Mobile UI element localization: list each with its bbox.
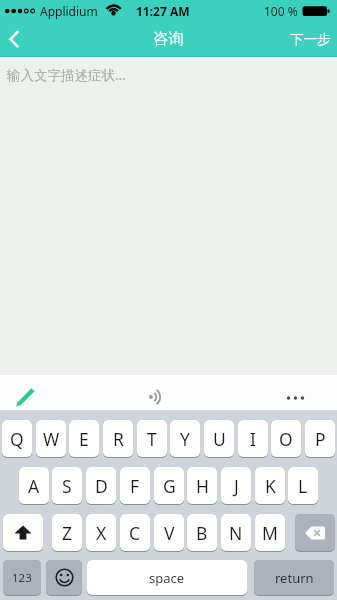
staticText: I xyxy=(250,427,256,451)
staticText: D xyxy=(95,474,108,498)
button[interactable]: C xyxy=(120,514,150,551)
button[interactable] xyxy=(295,514,335,551)
button[interactable]: D xyxy=(86,467,116,504)
button[interactable]: O xyxy=(271,420,301,457)
staticText: B xyxy=(196,521,208,545)
staticText: S xyxy=(62,474,72,498)
staticText: 下一步 xyxy=(290,31,331,48)
staticText: P xyxy=(315,427,326,451)
button[interactable]: Z xyxy=(52,514,82,551)
button[interactable]: U xyxy=(204,420,234,457)
staticText: Y xyxy=(180,427,190,451)
button[interactable]: H xyxy=(187,467,217,504)
button[interactable] xyxy=(12,383,40,410)
button[interactable] xyxy=(46,560,82,595)
staticText: L xyxy=(298,474,308,498)
staticText: space xyxy=(149,569,185,587)
staticText: return xyxy=(275,569,314,587)
staticText: C xyxy=(129,521,141,545)
button[interactable] xyxy=(280,388,310,408)
staticText: M xyxy=(262,521,278,545)
button[interactable]: T xyxy=(137,420,167,457)
staticText: 咨询 xyxy=(153,29,184,49)
staticText: 输入文字描述症状... xyxy=(7,66,126,84)
button[interactable]: W xyxy=(36,420,66,457)
staticText: Z xyxy=(62,521,73,545)
button[interactable]: S xyxy=(52,467,82,504)
button[interactable] xyxy=(3,514,43,551)
staticText: Applidium xyxy=(40,3,98,19)
button[interactable]: B xyxy=(187,514,217,551)
staticText: G xyxy=(163,474,176,498)
staticText: X xyxy=(96,521,107,545)
staticText: U xyxy=(213,427,226,451)
button[interactable]: N xyxy=(221,514,251,551)
button[interactable]: X xyxy=(86,514,116,551)
button[interactable] xyxy=(145,385,169,409)
staticText: W xyxy=(43,427,60,451)
staticText: N xyxy=(229,521,243,545)
button[interactable]: V xyxy=(154,514,184,551)
button[interactable]: 下一步 xyxy=(270,21,331,57)
staticText: A xyxy=(28,474,40,498)
button[interactable]: E xyxy=(69,420,99,457)
button[interactable]: Q xyxy=(2,420,32,457)
staticText: 100 % xyxy=(264,3,298,19)
button[interactable]: F xyxy=(120,467,150,504)
staticText: V xyxy=(164,521,175,545)
staticText: H xyxy=(196,474,209,498)
button[interactable]: K xyxy=(255,467,285,504)
button[interactable]: Y xyxy=(170,420,200,457)
staticText: K xyxy=(265,474,276,498)
staticText: F xyxy=(130,474,140,498)
button[interactable]: J xyxy=(221,467,251,504)
button[interactable]: M xyxy=(255,514,285,551)
staticText: Q xyxy=(10,427,24,451)
button[interactable] xyxy=(0,57,337,375)
staticText: J xyxy=(234,474,239,498)
staticText: O xyxy=(279,427,293,451)
button[interactable]: G xyxy=(154,467,184,504)
button[interactable] xyxy=(0,21,337,57)
button[interactable]: 123 xyxy=(3,560,41,595)
button[interactable]: P xyxy=(305,420,335,457)
staticText: T xyxy=(147,427,157,451)
button[interactable]: R xyxy=(103,420,133,457)
staticText: R xyxy=(113,427,124,451)
button[interactable]: space xyxy=(87,560,247,595)
button[interactable]: L xyxy=(288,467,318,504)
staticText: 11:27 AM xyxy=(136,3,190,19)
button[interactable]: A xyxy=(19,467,49,504)
staticText: E xyxy=(79,427,89,451)
button[interactable]: I xyxy=(238,420,268,457)
staticText: 123 xyxy=(12,570,32,586)
button[interactable]: return xyxy=(254,560,334,595)
